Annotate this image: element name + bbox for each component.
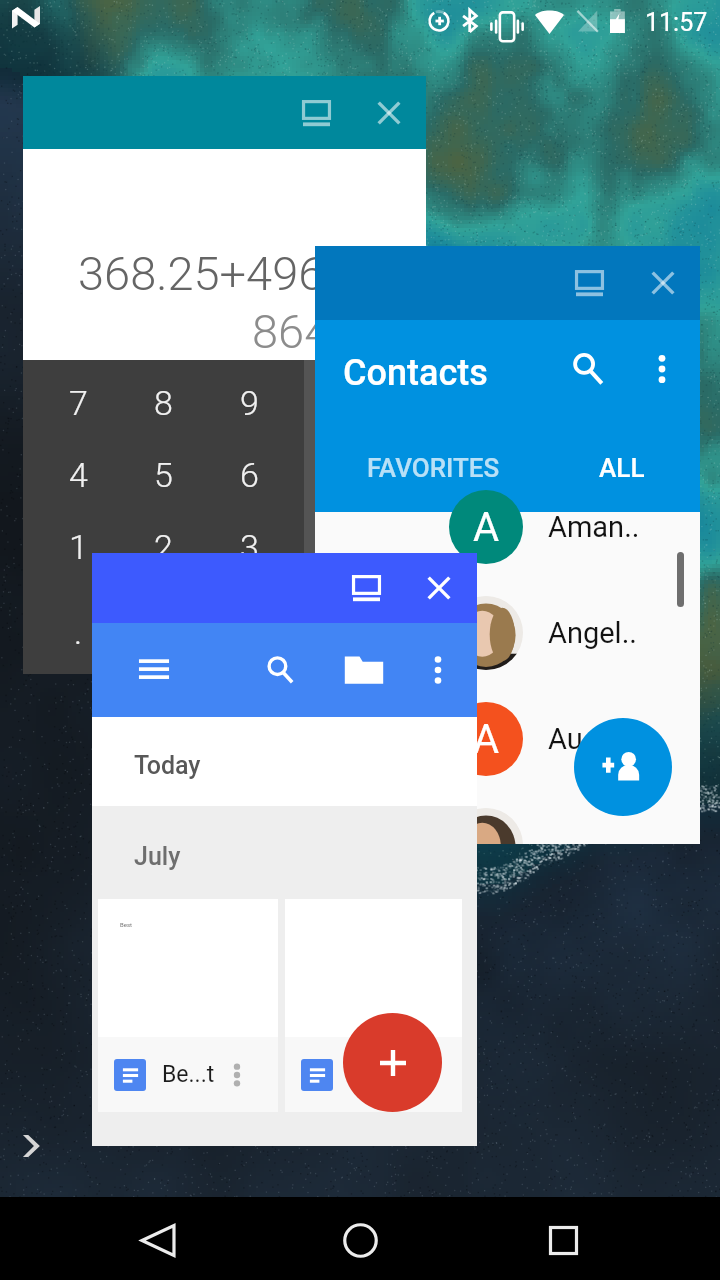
button[interactable]: Close window — [413, 562, 465, 614]
staticText: = — [240, 612, 259, 652]
button[interactable]: 0 — [121, 604, 205, 660]
staticText: Contacts — [343, 352, 488, 394]
staticText: Best — [120, 921, 132, 928]
staticText: 5 — [154, 455, 173, 495]
button[interactable]: ALL — [560, 436, 684, 500]
staticText: 2 — [154, 527, 173, 567]
button[interactable]: More options — [410, 642, 466, 698]
button[interactable]: Search — [561, 342, 615, 396]
button[interactable]: 4 — [36, 447, 120, 503]
staticText: Angel.. — [548, 616, 637, 650]
staticText: 1 — [69, 527, 88, 567]
staticText: 9 — [240, 383, 259, 423]
button[interactable]: 7 — [36, 375, 120, 431]
button[interactable]: 9 — [207, 375, 291, 431]
button[interactable]: Restore window — [340, 562, 392, 614]
button[interactable] — [315, 791, 700, 844]
button[interactable]: Home — [328, 1208, 393, 1273]
staticText: 7 — [69, 383, 88, 423]
button[interactable]: 6 — [207, 447, 291, 503]
button[interactable]: More options — [635, 342, 689, 396]
button[interactable]: 3 — [207, 519, 291, 575]
staticText: 11:57 — [645, 8, 708, 37]
button[interactable]: Close window — [637, 257, 689, 309]
button[interactable]: A — [315, 473, 700, 581]
button[interactable]: Folder — [336, 642, 392, 698]
button[interactable]: 2 — [121, 519, 205, 575]
button[interactable]: . — [36, 604, 120, 660]
button[interactable]: A — [315, 685, 700, 793]
staticText: Au — [548, 722, 583, 756]
staticText: ALL — [599, 453, 645, 483]
button[interactable]: Close window — [363, 87, 415, 139]
button[interactable]: Restore window — [290, 87, 342, 139]
button[interactable]: Recent apps — [531, 1208, 596, 1273]
staticText: A — [473, 504, 500, 551]
button[interactable]: = — [207, 604, 291, 660]
staticText: 8 — [154, 383, 173, 423]
button[interactable]: Restore window — [563, 257, 615, 309]
staticText: 368.25+496.52 — [78, 246, 388, 301]
staticText: Today — [134, 751, 201, 780]
button[interactable]: Expand — [8, 1124, 52, 1168]
button[interactable]: 5 — [121, 447, 205, 503]
button[interactable]: Menu — [126, 642, 182, 698]
button[interactable]: Back — [125, 1208, 190, 1273]
staticText: Aman.. — [548, 510, 640, 544]
button[interactable]: 8 — [121, 375, 205, 431]
staticText: 3 — [240, 527, 259, 567]
button[interactable]: More options — [218, 1056, 256, 1094]
staticText: 0 — [154, 612, 173, 652]
button[interactable]: Best — [98, 899, 278, 1112]
button[interactable]: Angel.. — [315, 579, 700, 687]
button[interactable]: 1 — [36, 519, 120, 575]
staticText: 864.77 — [252, 304, 394, 359]
staticText: Be...t — [162, 1061, 215, 1088]
button[interactable]: FAVORITES — [351, 436, 516, 500]
button[interactable]: Create new — [343, 1013, 442, 1112]
button[interactable]: Add contact — [574, 718, 672, 816]
staticText: A — [473, 716, 500, 763]
button[interactable]: Search — [252, 642, 308, 698]
staticText: . — [74, 612, 83, 652]
staticText: July — [134, 842, 181, 871]
staticText: 6 — [240, 455, 259, 495]
button[interactable] — [285, 899, 462, 1112]
staticText: 4 — [69, 455, 88, 495]
staticText: FAVORITES — [367, 453, 500, 483]
